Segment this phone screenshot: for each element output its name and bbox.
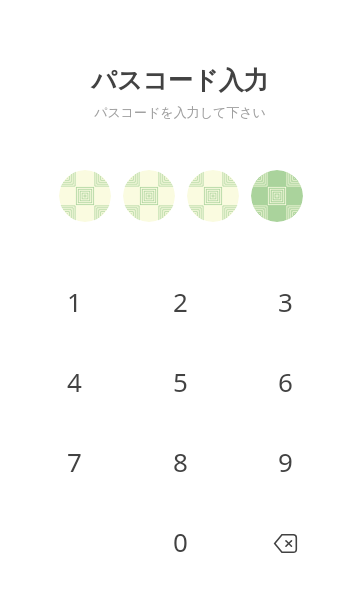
staticText: 8	[173, 444, 188, 479]
button[interactable]: 4	[34, 341, 114, 421]
staticText: 5	[173, 364, 188, 399]
staticText: 1	[67, 284, 82, 319]
staticText: パスコードを入力して下さい	[94, 104, 266, 120]
button[interactable]: 0	[140, 501, 220, 581]
staticText: 0	[173, 524, 188, 559]
staticText: 9	[278, 444, 293, 479]
button[interactable]: Backspace	[245, 501, 325, 581]
button[interactable]: 3	[245, 261, 325, 341]
button[interactable]: 6	[245, 341, 325, 421]
staticText: 6	[278, 364, 293, 399]
button[interactable]: 2	[140, 261, 220, 341]
button[interactable]: 1	[34, 261, 114, 341]
staticText: パスコード入力	[91, 65, 269, 96]
button[interactable]: 9	[245, 421, 325, 501]
other: Backspace	[274, 532, 297, 555]
button[interactable]: 5	[140, 341, 220, 421]
staticText: 2	[173, 284, 188, 319]
button[interactable]: 8	[140, 421, 220, 501]
staticText: 4	[67, 364, 82, 399]
staticText: 3	[278, 284, 293, 319]
staticText: 7	[67, 444, 82, 479]
button[interactable]: 7	[34, 421, 114, 501]
